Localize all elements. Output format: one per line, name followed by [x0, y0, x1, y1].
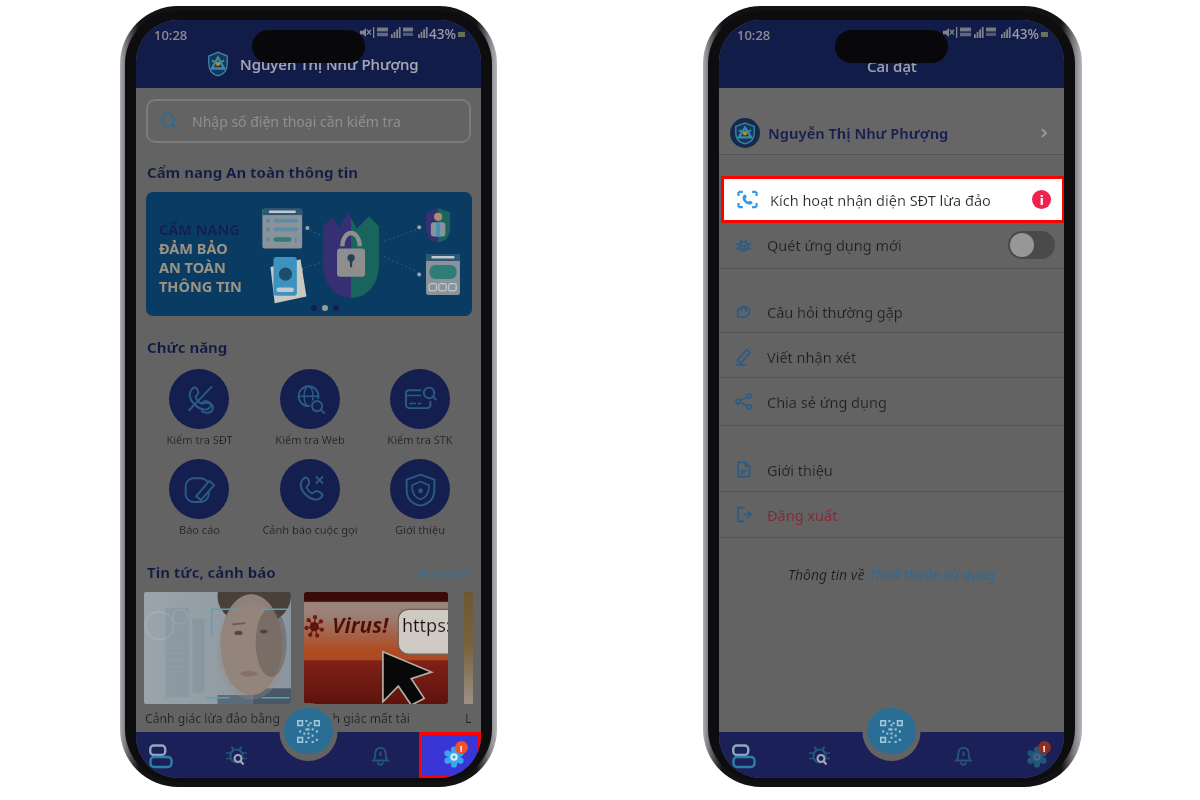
button[interactable]: Nhập số điện thoại cần kiểm tra	[146, 99, 471, 143]
button[interactable]: Thông báo	[363, 732, 397, 778]
button[interactable]	[1008, 231, 1055, 259]
button[interactable]: Giới thiệu	[719, 448, 1064, 491]
staticText: Cảnh giác lừa đảo bằng cách cảnh giác mấ…	[145, 710, 410, 727]
button[interactable]: Nguyễn Thị Như Phượng	[730, 111, 1052, 154]
staticText: 43%	[1012, 25, 1039, 43]
button[interactable]: Viết nhận xét	[719, 335, 1064, 378]
staticText: ĐẢM BẢO	[159, 238, 228, 258]
button[interactable]: Kiểm tra STK	[363, 369, 477, 447]
staticText: Câu hỏi thường gặp	[767, 302, 903, 322]
staticText: Thông tin về	[788, 565, 869, 584]
button[interactable]: Cài đặt	[1027, 741, 1051, 769]
staticText: Virus!	[332, 611, 389, 640]
staticText: Giới thiệu	[767, 460, 833, 480]
staticText: AN TOÀN	[159, 257, 226, 277]
button[interactable]: Đăng xuất	[719, 493, 1064, 536]
staticText: Giới thiệu	[395, 522, 445, 537]
button[interactable]: Quét mã QR	[284, 708, 333, 754]
staticText: Cẩm nang An toàn thông tin	[147, 162, 359, 182]
button[interactable]: Báo cáo	[142, 459, 256, 537]
button[interactable]: Xem thêm	[418, 566, 471, 582]
staticText: Chức năng	[147, 337, 228, 357]
button[interactable]: Kích hoạt nhận diện SĐT lừa đảo	[724, 179, 1062, 220]
staticText: !	[460, 742, 463, 754]
button[interactable]: Thông báo	[946, 732, 980, 778]
staticText: Nguyễn Thị Như Phượng	[240, 54, 419, 74]
button[interactable]: Kiểm tra Web	[253, 369, 367, 447]
staticText: Viết nhận xét	[767, 347, 857, 367]
staticText: Nguyễn Thị Như Phượng	[768, 123, 949, 143]
staticText: Báo cáo	[179, 522, 220, 537]
staticText: Cài đặt	[867, 56, 917, 76]
button[interactable]: CẨM NANG	[146, 192, 472, 316]
button[interactable]: Trang chủ	[727, 732, 761, 778]
button[interactable]: Câu hỏi thường gặp	[719, 290, 1064, 333]
staticText: Cảnh báo cuộc gọi	[262, 522, 358, 537]
button[interactable]: Chia sẻ ứng dụng	[719, 380, 1064, 423]
staticText: i	[1040, 192, 1044, 208]
button[interactable]: Kiểm tra SĐT	[142, 369, 256, 447]
button[interactable]: Quét ứng dụng	[802, 732, 836, 778]
staticText: Kiểm tra STK	[387, 432, 453, 447]
staticText: Quét ứng dụng mới	[767, 235, 902, 255]
button[interactable]	[144, 592, 291, 704]
staticText: Kích hoạt nhận diện SĐT lừa đảo	[770, 190, 991, 210]
staticText: L	[465, 710, 472, 727]
staticText: Chia sẻ ứng dụng	[767, 392, 887, 412]
button[interactable]: Thoả thuận sử dụng	[869, 565, 996, 584]
staticText: Nhập số điện thoại cần kiểm tra	[192, 112, 401, 131]
staticText: Tin tức, cảnh báo	[147, 562, 276, 582]
button[interactable]: Cài đặt	[420, 732, 481, 778]
button[interactable]: Cảnh báo cuộc gọi	[253, 459, 367, 537]
button[interactable]: Quét ứng dụng	[219, 732, 253, 778]
staticText: !	[1043, 742, 1046, 754]
staticText: https:/	[402, 613, 448, 638]
staticText: 43%	[429, 25, 456, 43]
staticText: Kiểm tra SĐT	[166, 432, 233, 447]
staticText: Đăng xuất	[767, 505, 838, 525]
button[interactable]: Giới thiệu	[363, 459, 477, 537]
button[interactable]: Virus!	[304, 592, 448, 704]
button[interactable]: Cài đặt	[444, 741, 468, 769]
staticText: 10:28	[154, 26, 188, 44]
staticText: Kiểm tra Web	[275, 432, 345, 447]
button[interactable]: Quét mã QR	[867, 708, 916, 754]
button[interactable]: Trang chủ	[144, 732, 178, 778]
staticText: THÔNG TIN	[159, 276, 242, 296]
staticText: 10:28	[737, 26, 771, 44]
staticText: CẨM NANG	[159, 219, 240, 239]
button[interactable]: Quét ứng dụng mới	[719, 223, 1064, 267]
